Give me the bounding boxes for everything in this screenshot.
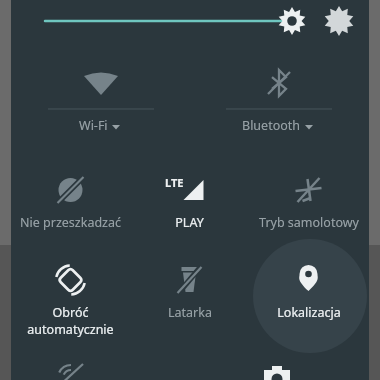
staticText: Wi-Fi [79,117,108,134]
staticText: Nie przeszkadzać [20,214,121,231]
button[interactable]: PLAY mobile data [130,162,249,250]
button[interactable]: Brightness slider [28,3,316,39]
staticText: Latarka [168,304,212,321]
staticText: Bluetooth [242,117,301,134]
button[interactable]: Auto rotate [11,252,130,340]
staticText: Lokalizacja [277,304,341,321]
button[interactable]: Location [249,252,368,340]
button[interactable]: Airplane mode [249,162,368,250]
button[interactable]: Bluetooth [200,57,358,145]
staticText: LTE [165,175,184,190]
button[interactable]: Wi-Fi [22,57,180,145]
button[interactable]: Flashlight [130,252,249,340]
staticText: Tryb samolotowy [259,214,359,231]
button[interactable]: Cast screen [11,340,130,380]
staticText: PLAY [175,214,204,231]
button[interactable]: Auto brightness [322,3,358,39]
button[interactable]: Camera [249,340,368,380]
button[interactable]: Do not disturb [11,162,130,250]
staticText: Obróć automatycznie [11,304,130,338]
